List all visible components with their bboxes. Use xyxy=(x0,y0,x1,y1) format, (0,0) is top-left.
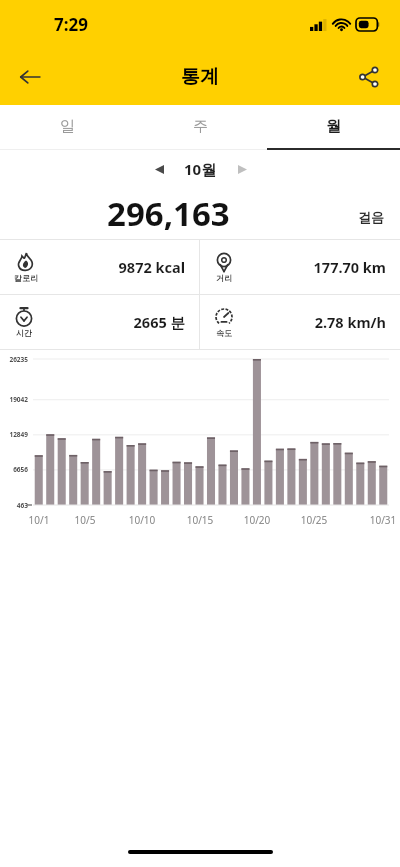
staticText: 거리 xyxy=(216,273,232,283)
staticText: 칼로리 xyxy=(14,273,38,283)
button[interactable]: Share xyxy=(346,54,392,100)
staticText: 10월 xyxy=(184,159,217,179)
staticText: 2.78 km/h xyxy=(234,312,386,332)
button[interactable]: 속도 xyxy=(200,295,400,349)
staticText: 26235 xyxy=(2,355,28,364)
button[interactable]: 주 xyxy=(134,105,267,148)
button[interactable]: 시간 xyxy=(0,295,199,349)
staticText: 속도 xyxy=(216,328,232,338)
staticText: 19042 xyxy=(2,395,28,404)
staticText: 10/20 xyxy=(241,513,273,527)
staticText: 463 xyxy=(2,501,28,510)
staticText: 177.70 km xyxy=(234,257,386,277)
staticText: 6656 xyxy=(2,465,28,474)
staticText: 일 xyxy=(60,117,75,136)
staticText: 2665 분 xyxy=(34,312,185,332)
staticText: 10/25 xyxy=(298,513,330,527)
staticText: 10/5 xyxy=(69,513,101,527)
staticText: 10/15 xyxy=(184,513,216,527)
button[interactable]: Next month xyxy=(225,152,259,186)
button[interactable]: 칼로리 xyxy=(0,240,199,294)
staticText: 10/1 xyxy=(23,513,55,527)
button[interactable]: 일 xyxy=(0,105,134,148)
staticText: 9872 kcal xyxy=(38,257,185,277)
staticText: 시간 xyxy=(16,328,32,338)
staticText: 10/31 xyxy=(367,513,399,527)
staticText: 12849 xyxy=(2,430,28,439)
button[interactable]: Back xyxy=(6,53,54,101)
button[interactable]: Previous month xyxy=(142,152,176,186)
staticText: 7:29 xyxy=(54,13,88,36)
button[interactable]: 월 xyxy=(267,105,400,148)
staticText: 통계 xyxy=(181,65,219,89)
staticText: 10/10 xyxy=(126,513,158,527)
staticText: 296,163 xyxy=(107,191,230,236)
button[interactable]: 거리 xyxy=(200,240,400,294)
staticText: 주 xyxy=(193,117,208,136)
staticText: 걸음 xyxy=(358,209,384,225)
staticText: 월 xyxy=(326,117,341,136)
